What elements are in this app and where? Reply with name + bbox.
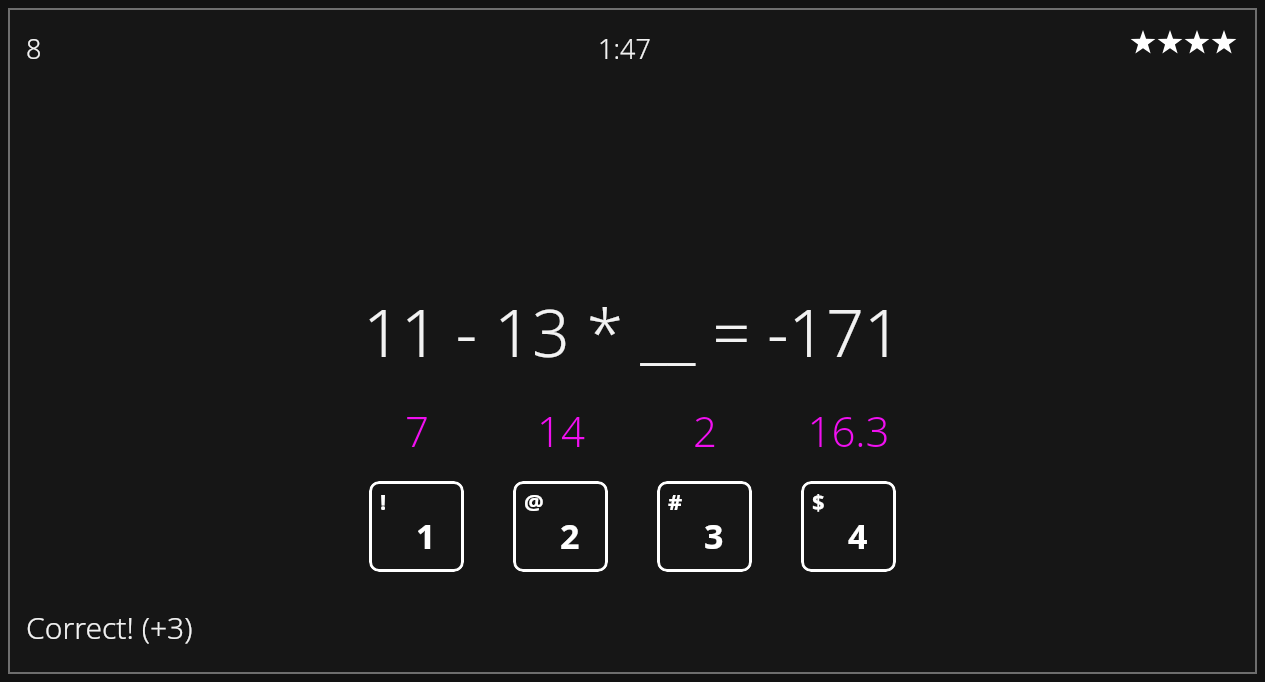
staticText: 2 xyxy=(560,513,580,559)
staticText: Correct! (+3) xyxy=(26,607,193,648)
button[interactable]: # xyxy=(657,481,752,572)
staticText: # xyxy=(668,486,683,516)
staticText: 7 xyxy=(405,402,429,459)
staticText: 11 - 13 * __ = -171 xyxy=(363,286,902,376)
staticText: 3 xyxy=(704,513,724,559)
staticText: 16.3 xyxy=(807,402,890,459)
staticText: @ xyxy=(524,486,544,516)
staticText: 1:47 xyxy=(598,30,651,67)
staticText: 4 xyxy=(848,513,868,559)
staticText: $ xyxy=(812,486,825,516)
button[interactable]: @ xyxy=(513,481,608,572)
button[interactable]: ! xyxy=(369,481,464,572)
staticText: 8 xyxy=(26,30,42,67)
staticText: ! xyxy=(380,486,387,516)
staticText: 2 xyxy=(693,402,717,459)
button[interactable]: $ xyxy=(801,481,896,572)
staticText: 14 xyxy=(537,402,585,459)
other: Four stars rating xyxy=(1130,30,1237,56)
staticText: 1 xyxy=(416,513,436,559)
